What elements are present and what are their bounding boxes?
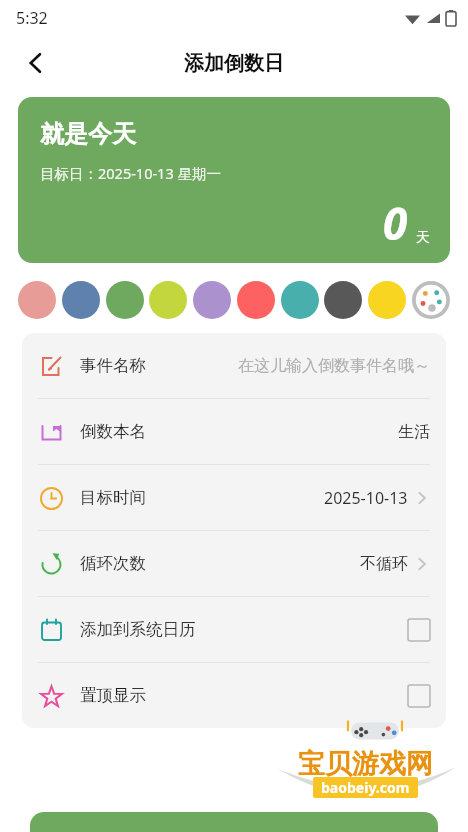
button[interactable]: 置顶显示 — [22, 663, 446, 728]
staticText: 循环次数 — [80, 553, 146, 574]
button[interactable]: 事件名称 — [22, 333, 446, 398]
staticText: 生活 — [398, 422, 430, 442]
button[interactable]: 目标时间 — [22, 465, 446, 530]
button[interactable]: 就是今天 — [18, 97, 450, 263]
button[interactable]: Color — [368, 281, 406, 319]
staticText: 天 — [416, 229, 430, 247]
button[interactable]: Save — [30, 812, 438, 832]
button[interactable]: Color — [237, 281, 275, 319]
button[interactable]: Color — [281, 281, 319, 319]
button[interactable]: More colors — [412, 281, 450, 319]
button[interactable]: 倒数本名 — [22, 399, 446, 464]
button[interactable]: Color — [62, 281, 100, 319]
button[interactable]: Toggle — [408, 685, 430, 707]
staticText: baobeiy.com — [321, 778, 410, 797]
staticText: 在这儿输入倒数事件名哦～ — [238, 356, 430, 376]
staticText: 添加到系统日历 — [80, 619, 196, 640]
staticText: 目标时间 — [80, 487, 146, 508]
staticText: 2025-10-13 — [324, 487, 408, 509]
button[interactable]: 循环次数 — [22, 531, 446, 596]
staticText: 事件名称 — [80, 355, 146, 376]
staticText: 就是今天 — [40, 119, 136, 149]
staticText: 0 — [383, 193, 408, 253]
button[interactable]: Back — [14, 41, 58, 85]
button[interactable]: Color — [106, 281, 144, 319]
staticText: 宝贝游戏网 — [298, 747, 433, 781]
button[interactable]: Color — [18, 281, 56, 319]
staticText: 添加倒数日 — [184, 51, 284, 76]
staticText: 倒数本名 — [80, 421, 146, 442]
staticText: 5:32 — [16, 7, 48, 29]
button[interactable]: Color — [324, 281, 362, 319]
button[interactable]: Color — [149, 281, 187, 319]
button[interactable]: Toggle — [408, 619, 430, 641]
staticText: 置顶显示 — [80, 685, 146, 706]
staticText: 目标日：2025-10-13 星期一 — [40, 163, 221, 183]
button[interactable]: Color — [193, 281, 231, 319]
staticText: 不循环 — [360, 554, 408, 574]
button[interactable]: 添加到系统日历 — [22, 597, 446, 662]
